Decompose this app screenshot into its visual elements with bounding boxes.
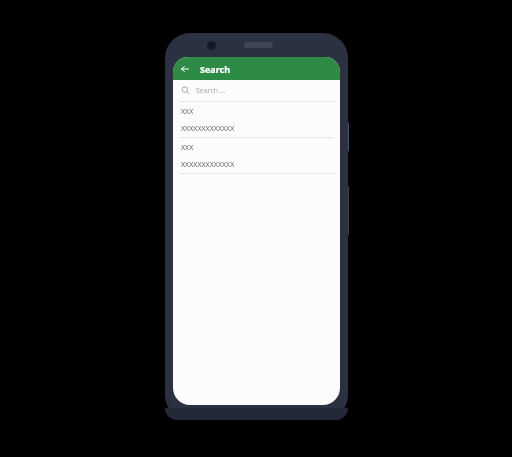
button[interactable]: XXX xyxy=(173,102,340,137)
other: Search xyxy=(181,86,190,95)
staticText: XXXXXXXXXXXXX xyxy=(181,160,235,170)
staticText: Search xyxy=(200,63,231,75)
staticText: XXXXXXXXXXXXX xyxy=(181,124,235,134)
staticText: Search … xyxy=(196,86,226,96)
button[interactable]: XXX xyxy=(173,138,340,173)
staticText: XXX xyxy=(181,107,194,117)
button[interactable]: Back xyxy=(177,61,193,77)
button[interactable]: Search xyxy=(173,80,340,101)
staticText: XXX xyxy=(181,143,194,153)
